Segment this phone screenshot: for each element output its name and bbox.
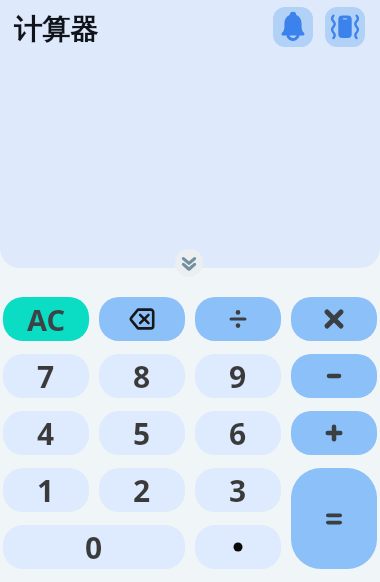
staticText: 4 bbox=[37, 413, 55, 454]
button[interactable]: 8 bbox=[99, 354, 185, 398]
button[interactable] bbox=[273, 7, 313, 47]
button[interactable]: 0 bbox=[3, 525, 185, 569]
staticText: 6 bbox=[229, 413, 247, 454]
staticText: 7 bbox=[37, 356, 55, 397]
button[interactable]: 5 bbox=[99, 411, 185, 455]
button[interactable] bbox=[195, 297, 281, 341]
button[interactable] bbox=[291, 297, 377, 341]
button[interactable] bbox=[325, 7, 365, 47]
button[interactable]: 2 bbox=[99, 468, 185, 512]
button[interactable]: 4 bbox=[3, 411, 89, 455]
staticText: 3 bbox=[229, 470, 247, 511]
button[interactable] bbox=[195, 525, 281, 569]
staticText: 0 bbox=[85, 527, 103, 568]
button[interactable] bbox=[175, 249, 203, 277]
staticText: AC bbox=[27, 300, 66, 339]
button[interactable]: 3 bbox=[195, 468, 281, 512]
button[interactable]: 1 bbox=[3, 468, 89, 512]
button[interactable] bbox=[291, 411, 377, 455]
button[interactable]: 6 bbox=[195, 411, 281, 455]
staticText: 5 bbox=[133, 413, 151, 454]
button[interactable] bbox=[99, 297, 185, 341]
button[interactable] bbox=[291, 354, 377, 398]
staticText: 9 bbox=[229, 356, 247, 397]
staticText: 2 bbox=[133, 470, 151, 511]
staticText: 计算器 bbox=[14, 12, 98, 47]
button[interactable]: 7 bbox=[3, 354, 89, 398]
button[interactable]: AC bbox=[3, 297, 89, 341]
button[interactable] bbox=[291, 468, 377, 569]
staticText: 1 bbox=[37, 470, 55, 511]
staticText: 8 bbox=[133, 356, 151, 397]
button[interactable]: 9 bbox=[195, 354, 281, 398]
